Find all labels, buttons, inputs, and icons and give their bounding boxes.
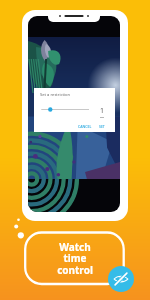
staticText: Watch time control [57,240,93,277]
staticText: CANCEL [78,124,92,129]
staticText: SET [99,124,105,129]
button[interactable]: Hide watch time [108,266,134,292]
staticText: 1 [100,106,105,116]
button[interactable]: CANCEL [78,124,92,129]
button[interactable]: Watch time control [25,232,124,284]
staticText: Set a restriction [40,92,71,98]
button[interactable]: SET [99,124,105,129]
